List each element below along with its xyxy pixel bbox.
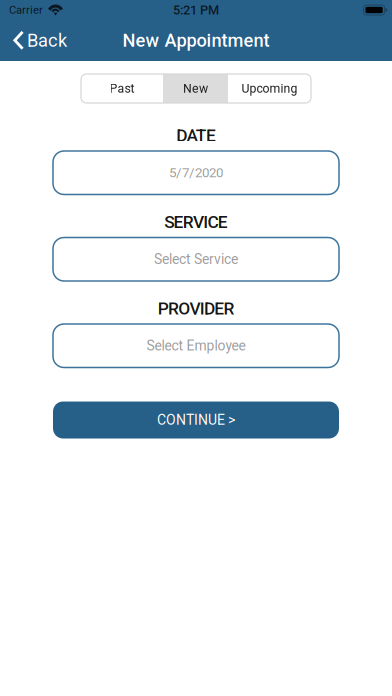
button[interactable]: Past [81, 74, 163, 103]
staticText: CONTINUE > [157, 412, 235, 428]
staticText: Past [109, 81, 134, 96]
staticText: New Appointment [122, 30, 269, 51]
button[interactable]: Back [0, 20, 75, 61]
staticText: Select Service [154, 251, 238, 267]
staticText: Select Employee [146, 338, 245, 354]
button[interactable]: Upcoming [228, 74, 311, 103]
staticText: SERVICE [164, 212, 228, 232]
staticText: 5/7/2020 [169, 165, 223, 180]
staticText: Upcoming [241, 81, 297, 96]
staticText: Carrier [9, 3, 43, 16]
button[interactable]: Select Employee [53, 324, 339, 367]
staticText: PROVIDER [158, 298, 234, 319]
button[interactable]: CONTINUE > [53, 401, 339, 438]
staticText: DATE [176, 125, 216, 146]
staticText: 5:21 PM [173, 2, 219, 17]
button[interactable]: 5/7/2020 [53, 151, 339, 194]
button[interactable]: New [163, 74, 228, 103]
staticText: New [183, 81, 208, 96]
staticText: Back [27, 30, 67, 51]
button[interactable]: Select Service [53, 237, 339, 281]
